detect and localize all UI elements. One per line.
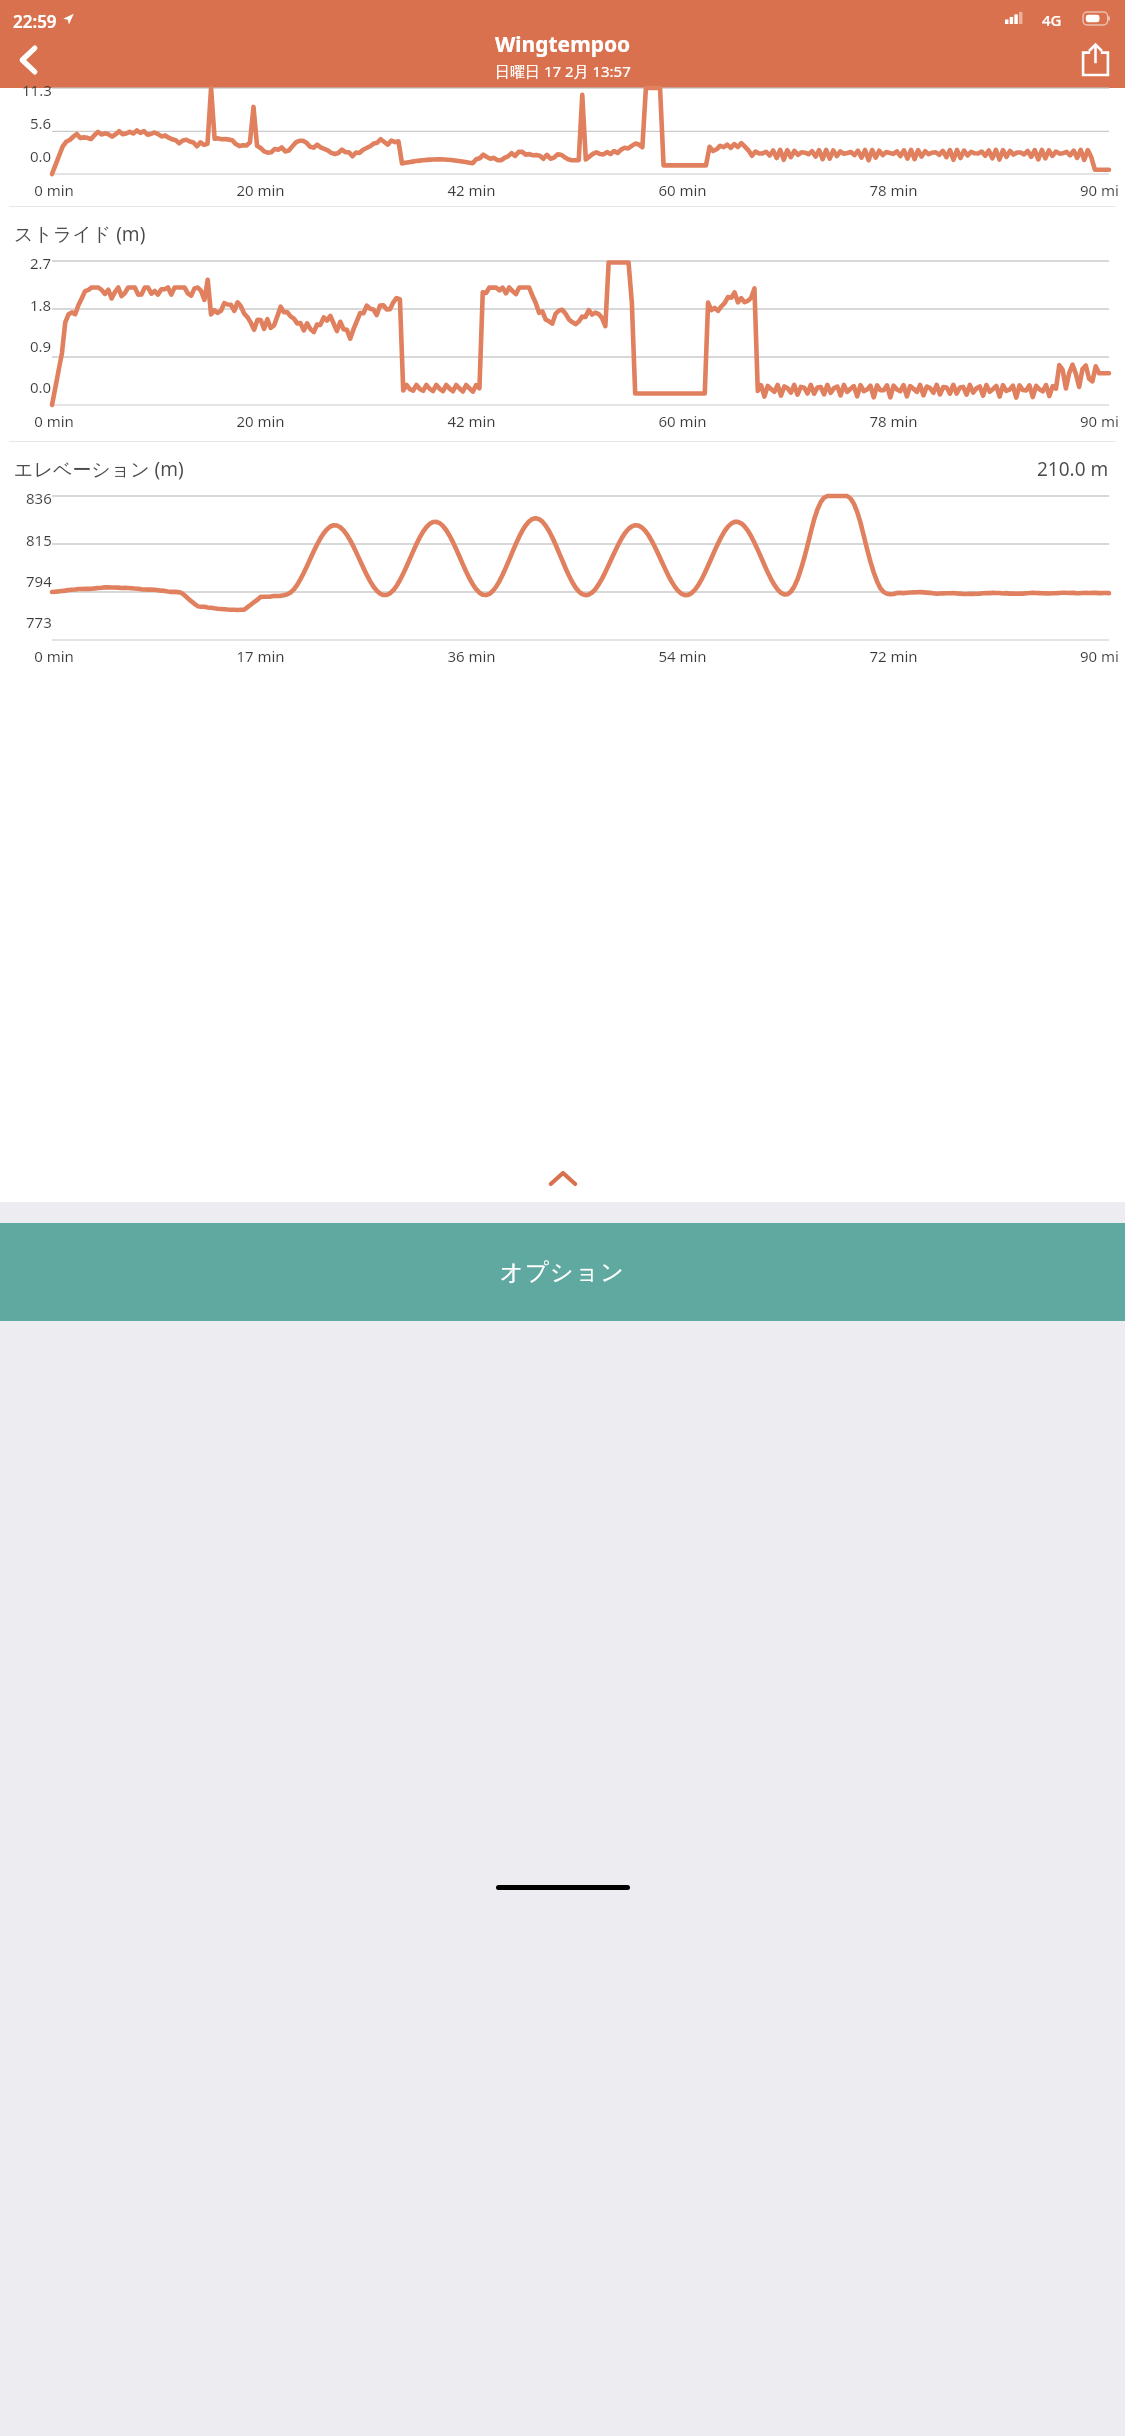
staticText: 90 mi	[1080, 180, 1119, 200]
button[interactable]: Collapse	[0, 1158, 1125, 1198]
staticText: 815	[26, 530, 52, 550]
button[interactable]: オプション	[0, 1223, 1125, 1321]
staticText: Wingtempoo	[495, 30, 631, 59]
staticText: 773	[26, 612, 52, 632]
button[interactable]: Back	[4, 36, 52, 84]
staticText: エレベーション (m)	[14, 456, 184, 482]
staticText: 78 min	[869, 411, 918, 431]
staticText: 54 min	[658, 646, 707, 666]
staticText: ストライド (m)	[14, 221, 146, 247]
staticText: 90 mi	[1080, 646, 1119, 666]
staticText: 836	[26, 488, 52, 508]
staticText: 90 mi	[1080, 411, 1119, 431]
staticText: 36 min	[447, 646, 496, 666]
staticText: 0.0	[30, 146, 52, 166]
staticText: 78 min	[869, 180, 918, 200]
staticText: 42 min	[447, 411, 496, 431]
staticText: 5.6	[30, 113, 52, 133]
staticText: 20 min	[236, 180, 285, 200]
staticText: 0.9	[30, 336, 52, 356]
staticText: 日曜日 17 2月 13:57	[495, 61, 631, 81]
staticText: 20 min	[236, 411, 285, 431]
staticText: 11.3	[22, 80, 52, 100]
staticText: 4G	[1042, 10, 1062, 30]
staticText: 60 min	[658, 411, 707, 431]
staticText: 0.0	[30, 377, 52, 397]
staticText: 0 min	[34, 411, 74, 431]
staticText: 1.8	[30, 295, 52, 315]
button[interactable]: Share	[1071, 36, 1119, 84]
staticText: 0 min	[34, 646, 74, 666]
staticText: オプション	[500, 1258, 626, 1287]
staticText: 22:59	[13, 10, 57, 33]
staticText: 0 min	[34, 180, 74, 200]
staticText: 2.7	[30, 253, 52, 273]
staticText: 794	[26, 571, 52, 591]
staticText: 210.0 m	[1037, 456, 1109, 482]
staticText: 72 min	[869, 646, 918, 666]
staticText: 42 min	[447, 180, 496, 200]
staticText: 60 min	[658, 180, 707, 200]
staticText: 17 min	[236, 646, 285, 666]
